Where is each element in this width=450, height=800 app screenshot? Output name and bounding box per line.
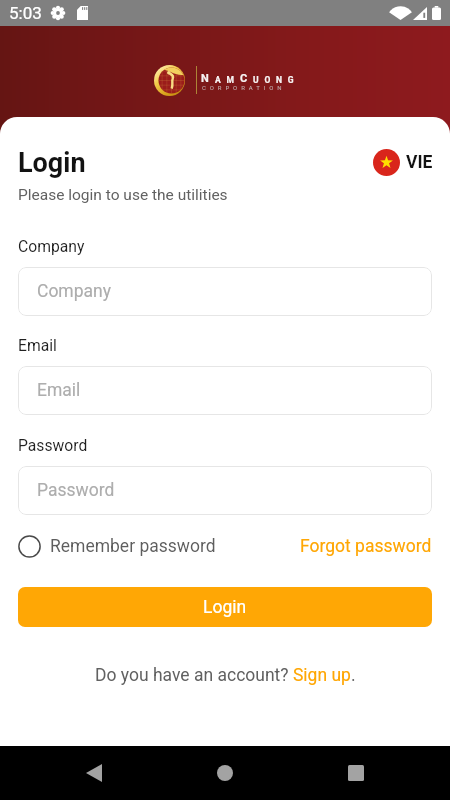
staticText: CORPORATION: [202, 84, 286, 91]
button[interactable]: Company: [18, 267, 432, 316]
button[interactable]: Password: [18, 466, 432, 515]
staticText: VIE: [406, 152, 433, 173]
staticText: 5:03: [9, 3, 42, 23]
staticText: N: [201, 72, 215, 85]
staticText: Company: [37, 281, 112, 302]
staticText: AM: [215, 75, 240, 85]
staticText: Please login to use the utilities: [18, 186, 228, 204]
button[interactable]: Remember password: [18, 535, 216, 558]
staticText: C: [240, 72, 253, 85]
staticText: Password: [37, 480, 115, 501]
button[interactable]: Do you have an account? Sign up.: [95, 665, 356, 686]
button[interactable]: Email: [18, 366, 432, 415]
staticText: Remember password: [50, 536, 216, 557]
staticText: Email: [37, 380, 81, 401]
button[interactable]: Forgot password: [300, 536, 432, 557]
staticText: Login: [18, 147, 86, 179]
staticText: Login: [203, 597, 247, 618]
button[interactable]: Home: [205, 753, 245, 793]
button[interactable]: Recent apps: [336, 753, 376, 793]
button[interactable]: Login: [18, 587, 432, 627]
staticText: UONG: [253, 75, 300, 85]
staticText: Email: [18, 336, 57, 354]
button[interactable]: VIE: [373, 149, 433, 176]
staticText: Password: [18, 436, 88, 454]
button[interactable]: Back: [74, 753, 114, 793]
staticText: Company: [18, 237, 85, 255]
